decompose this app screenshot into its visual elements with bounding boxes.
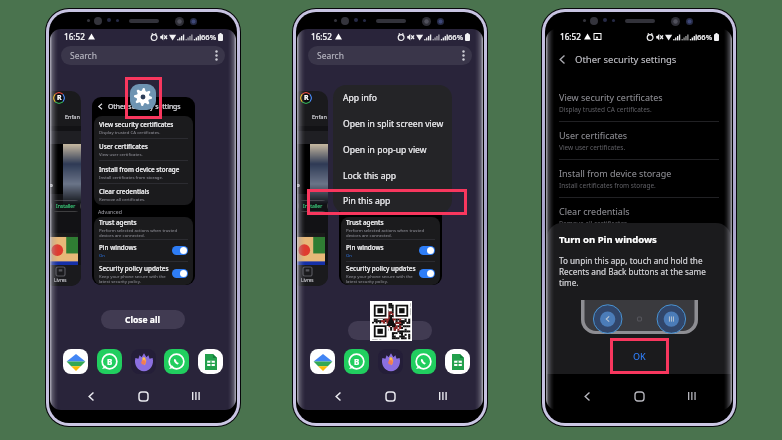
staticText: Display trusted CA certificates. (559, 105, 652, 114)
button[interactable]: Pin windows (341, 240, 440, 261)
button[interactable]: Gallery (63, 349, 88, 374)
button[interactable]: WhatsApp (411, 349, 436, 374)
button[interactable]: Search (61, 46, 225, 65)
staticText: App info (343, 92, 377, 104)
staticText: Turn on Pin windows (559, 233, 657, 246)
staticText: View security certificates (99, 120, 174, 129)
staticText: Clear credentials (346, 187, 397, 196)
button[interactable]: Home (131, 387, 155, 405)
staticText: Livres (301, 277, 314, 283)
button[interactable]: Trust agents (94, 217, 193, 239)
staticText: Enfan (312, 113, 327, 120)
staticText: OK (633, 350, 646, 362)
button[interactable]: Install from device storage (546, 160, 732, 197)
staticText: B (107, 356, 113, 367)
staticText: lo (297, 182, 300, 189)
staticText: Open in pop-up view (343, 144, 427, 156)
staticText: Remove all certificates. (346, 196, 393, 202)
button[interactable]: Security policy updates (341, 262, 440, 285)
button[interactable]: Lock this app (333, 163, 452, 189)
button[interactable]: Settings (130, 84, 156, 110)
button[interactable]: Clear credentials (546, 198, 732, 235)
staticText: 66% (448, 32, 464, 42)
button[interactable]: User certificates (341, 139, 440, 160)
staticText: Trust agents (99, 218, 137, 227)
staticText: To unpin this app, touch and hold the Re… (559, 255, 719, 288)
button[interactable]: Back (79, 387, 103, 405)
button[interactable]: Pin this app (333, 189, 452, 213)
button[interactable]: Trust agents (341, 217, 440, 239)
staticText: Close all (372, 325, 408, 337)
staticText: Display trusted CA certificates. (99, 129, 161, 135)
button[interactable]: Install from device storage (94, 161, 193, 183)
button[interactable]: Open in split screen view (333, 111, 452, 137)
button[interactable]: Firefox (131, 349, 156, 374)
staticText: Trust agents (346, 218, 384, 227)
staticText: R (304, 93, 309, 103)
button[interactable]: Security policy updates (94, 262, 193, 285)
button[interactable]: Recents (431, 387, 455, 405)
staticText: User certificates (346, 142, 395, 151)
button[interactable]: Install from device storage (341, 161, 440, 183)
staticText: Close all (125, 314, 161, 326)
staticText: 66% (697, 32, 713, 42)
button[interactable]: Recents (184, 387, 208, 405)
button[interactable]: Search (308, 46, 472, 65)
button[interactable]: Back (575, 387, 599, 405)
button[interactable]: Open in pop-up view (333, 137, 452, 163)
button[interactable]: Firefox (378, 349, 403, 374)
staticText: On (346, 252, 353, 258)
staticText: Keep your phone secure with the latest s… (346, 273, 416, 284)
staticText: Security policy updates (346, 264, 416, 273)
staticText: Install certificates from storage. (346, 174, 411, 180)
button[interactable]: Clear credentials (341, 184, 440, 205)
staticText: Install from device storage (559, 167, 672, 179)
staticText: Remove all certificates. (99, 196, 146, 202)
staticText: Install from device storage (99, 165, 180, 174)
staticText: Enfan (65, 113, 80, 120)
staticText: On (99, 252, 106, 258)
button[interactable]: WhatsApp Business (97, 349, 122, 374)
staticText: View user certificates. (346, 151, 390, 157)
staticText: View security certificates (346, 120, 421, 129)
button[interactable]: Close all (348, 321, 432, 340)
staticText: lo (50, 182, 53, 189)
button[interactable]: Home (627, 387, 651, 405)
button[interactable]: WhatsApp (164, 349, 189, 374)
button[interactable]: View security certificates (546, 84, 732, 121)
staticText: Pin windows (99, 243, 137, 252)
button[interactable]: OK (610, 338, 669, 374)
staticText: Pin this app (343, 195, 391, 207)
button[interactable]: WhatsApp Business (344, 349, 369, 374)
button[interactable]: Pin windows (94, 240, 193, 261)
staticText: Other security settings (355, 102, 428, 111)
staticText: Advanced (345, 208, 369, 215)
staticText: Perform selected actions when trusted de… (346, 227, 435, 238)
button[interactable]: App info (333, 85, 452, 111)
button[interactable]: Close all (101, 310, 185, 329)
button[interactable]: Gallery (310, 349, 335, 374)
staticText: 16:52 (64, 31, 85, 42)
staticText: Clear credentials (559, 205, 630, 217)
staticText: Security policy updates (99, 264, 169, 273)
staticText: View user certificates. (559, 143, 626, 152)
button[interactable]: Home (378, 387, 402, 405)
staticText: User certificates (99, 142, 148, 151)
staticText: View security certificates (559, 91, 663, 103)
button[interactable]: Clear credentials (94, 184, 193, 205)
button[interactable]: View security certificates (341, 116, 440, 138)
button[interactable]: Google Sheets (198, 349, 223, 374)
button[interactable]: User certificates (94, 139, 193, 160)
button[interactable]: User certificates (546, 122, 732, 159)
button[interactable]: View security certificates (94, 116, 193, 138)
staticText: Lock this app (343, 170, 397, 182)
button[interactable]: Recents (680, 387, 704, 405)
staticText: 16:52 (560, 31, 581, 42)
staticText: Keep your phone secure with the latest s… (99, 273, 169, 284)
staticText: Installer (56, 203, 76, 210)
button[interactable]: Google Sheets (445, 349, 470, 374)
staticText: Other security settings (108, 102, 181, 111)
button[interactable]: Back (326, 387, 350, 405)
staticText: Pin windows (346, 243, 384, 252)
